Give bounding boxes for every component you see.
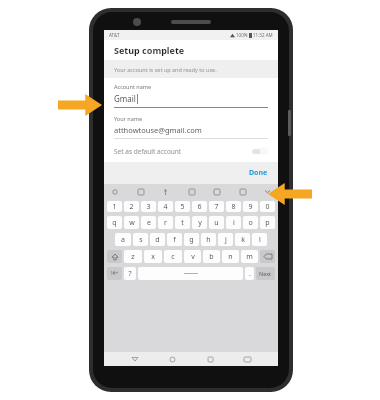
button[interactable]: e [141, 216, 156, 229]
staticText: q [112, 218, 117, 228]
button[interactable]: Next [256, 267, 275, 280]
staticText: Setup complete [114, 44, 185, 56]
button[interactable]: y [192, 216, 207, 229]
staticText: Account name [114, 83, 152, 90]
staticText: ? [128, 269, 132, 279]
staticText: z [131, 252, 135, 262]
staticText: 6 [197, 202, 202, 212]
button[interactable]: o [243, 216, 258, 229]
staticText: l [259, 235, 261, 245]
button[interactable]: c [164, 250, 182, 263]
staticText: y [198, 218, 202, 228]
staticText: e [147, 218, 151, 228]
button[interactable]: Voice input [161, 187, 170, 196]
button[interactable]: b [203, 250, 220, 263]
staticText: 5 [180, 202, 185, 212]
button[interactable]: 0 [260, 201, 275, 212]
button[interactable]: 4 [158, 201, 173, 212]
staticText: Your name [114, 115, 142, 122]
button[interactable]: s [133, 233, 148, 246]
button[interactable]: p [260, 216, 275, 229]
staticText: t [181, 218, 184, 228]
staticText: 11:32 AM [253, 32, 273, 38]
staticText: Your account is set up and ready to use. [114, 66, 217, 73]
staticText: d [155, 235, 160, 245]
staticText: atthowtouse@gmail.com [114, 125, 202, 135]
staticText: !#+ [111, 270, 119, 277]
button[interactable]: Expand toolbar [263, 187, 272, 196]
button[interactable]: u [209, 216, 224, 229]
staticText: 8 [231, 202, 236, 212]
staticText: w [129, 218, 135, 228]
button[interactable]: q [107, 216, 122, 229]
staticText: o [248, 218, 253, 228]
button[interactable]: Space [138, 267, 243, 280]
staticText: g [189, 235, 194, 245]
button[interactable]: Back [129, 353, 141, 365]
button[interactable]: Hide keyboard [241, 353, 253, 365]
staticText: 7 [214, 202, 219, 212]
staticText: 3 [146, 202, 151, 212]
staticText: Done [249, 168, 268, 178]
staticText: 4 [163, 202, 168, 212]
button[interactable]: w [124, 216, 139, 229]
button[interactable]: f [167, 233, 182, 246]
button[interactable]: v [184, 250, 201, 263]
button[interactable]: Sticker [187, 187, 196, 196]
staticText: m [246, 252, 253, 262]
staticText: h [206, 235, 211, 245]
staticText: AT&T [109, 32, 120, 38]
button[interactable]: 2 [124, 201, 139, 212]
button[interactable]: x [144, 250, 162, 263]
staticText: 0 [265, 202, 270, 212]
button[interactable]: 7 [209, 201, 224, 212]
button[interactable]: d [150, 233, 165, 246]
button[interactable]: Recent apps [204, 353, 216, 365]
button[interactable]: 3 [141, 201, 156, 212]
staticText: Gmail [114, 93, 136, 104]
staticText: f [173, 235, 176, 245]
button[interactable]: Shift [107, 250, 122, 263]
button[interactable]: 6 [192, 201, 207, 212]
button[interactable]: GIF [212, 187, 221, 196]
staticText: a [121, 235, 125, 245]
button[interactable]: Symbols [107, 267, 122, 280]
button[interactable]: m [241, 250, 258, 263]
button[interactable]: i [226, 216, 241, 229]
button[interactable]: a [115, 233, 131, 246]
button[interactable]: Settings [238, 187, 247, 196]
staticText: Next [259, 270, 272, 277]
button[interactable]: Home [166, 353, 178, 365]
staticText: b [209, 252, 214, 262]
staticText: Set as default account [114, 147, 182, 156]
button[interactable]: 1 [107, 201, 122, 212]
button[interactable]: n [222, 250, 239, 263]
button[interactable]: ? [124, 267, 136, 280]
staticText: c [171, 252, 175, 262]
staticText: 9 [248, 202, 253, 212]
button[interactable]: 9 [243, 201, 258, 212]
staticText: n [228, 252, 233, 262]
button[interactable]: . [245, 267, 254, 280]
button[interactable]: Emoji [136, 187, 145, 196]
button[interactable]: l [252, 233, 267, 246]
button[interactable]: z [124, 250, 142, 263]
button[interactable]: g [184, 233, 199, 246]
button[interactable]: Backspace [260, 250, 275, 263]
staticText: j [225, 235, 227, 245]
button[interactable]: h [201, 233, 216, 246]
button[interactable]: 8 [226, 201, 241, 212]
button[interactable]: r [158, 216, 173, 229]
button[interactable]: t [175, 216, 190, 229]
staticText: r [164, 218, 167, 228]
button[interactable]: Done [239, 164, 278, 182]
button[interactable]: Clipboard [110, 187, 119, 196]
staticText: x [151, 252, 155, 262]
staticText: v [191, 252, 195, 262]
button[interactable]: 5 [175, 201, 190, 212]
button[interactable]: j [218, 233, 233, 246]
staticText: u [214, 218, 219, 228]
staticText: 1 [112, 202, 117, 212]
button[interactable]: k [235, 233, 250, 246]
button[interactable]: Set as default account [104, 140, 278, 162]
